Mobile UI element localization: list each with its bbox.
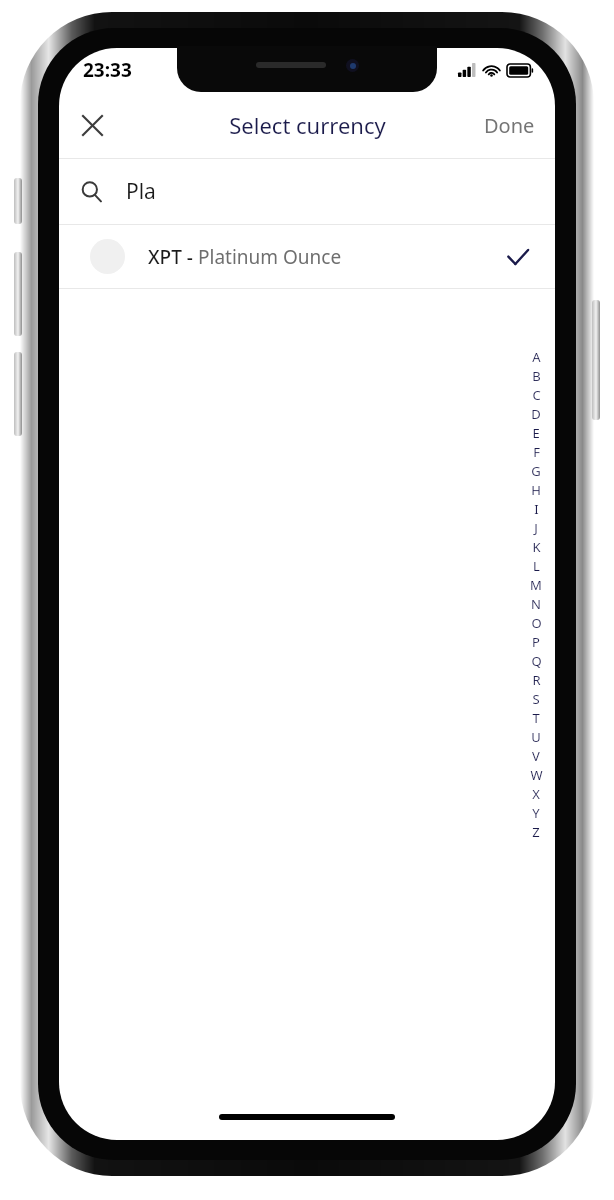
button[interactable]: Close <box>67 100 117 150</box>
staticText: 23:33 <box>83 57 132 83</box>
staticText: S <box>532 690 540 708</box>
staticText: C <box>532 386 541 404</box>
staticText: G <box>531 462 541 480</box>
staticText: Done <box>484 112 535 139</box>
button[interactable]: A <box>527 347 545 841</box>
staticText: XPT - <box>148 244 198 270</box>
staticText: V <box>532 747 540 765</box>
staticText: N <box>531 595 541 613</box>
staticText: A <box>532 348 541 366</box>
staticText: X <box>532 785 540 803</box>
staticText: U <box>531 728 541 746</box>
staticText: M <box>530 576 542 594</box>
staticText: L <box>533 557 540 575</box>
button[interactable]: XPT - <box>59 225 555 288</box>
staticText: J <box>534 519 538 537</box>
staticText: O <box>531 614 542 632</box>
staticText: D <box>531 405 541 423</box>
staticText: Pla <box>126 177 156 206</box>
staticText: W <box>530 766 543 784</box>
staticText: Platinum Ounce <box>198 244 342 270</box>
staticText: T <box>532 709 540 727</box>
other: Selected <box>495 234 541 280</box>
staticText: B <box>532 367 541 385</box>
staticText: K <box>532 538 541 556</box>
staticText: Q <box>531 652 542 670</box>
staticText: Select currency <box>229 110 386 140</box>
staticText: H <box>531 481 541 499</box>
staticText: P <box>532 633 540 651</box>
button[interactable]: Pla <box>59 159 555 224</box>
staticText: Z <box>532 823 540 841</box>
button[interactable]: Done <box>464 100 555 151</box>
staticText: E <box>532 424 540 442</box>
staticText: F <box>533 443 540 461</box>
staticText: I <box>534 500 539 518</box>
staticText: Y <box>532 804 540 822</box>
staticText: R <box>532 671 541 689</box>
